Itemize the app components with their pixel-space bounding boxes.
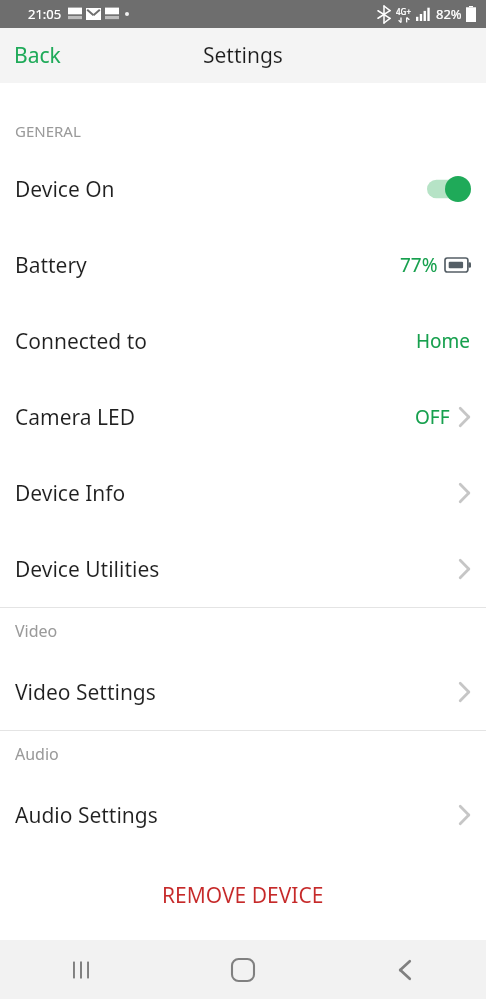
button[interactable]: Video Settings bbox=[0, 654, 486, 730]
staticText: REMOVE DEVICE bbox=[162, 881, 324, 910]
staticText: Connected to bbox=[15, 327, 147, 356]
staticText: 77% bbox=[400, 252, 438, 278]
staticText: Back bbox=[14, 41, 61, 70]
staticText: Device Utilities bbox=[15, 555, 160, 584]
staticText: 82% bbox=[436, 5, 462, 23]
button[interactable]: Device Utilities bbox=[0, 531, 486, 607]
button[interactable]: Battery bbox=[0, 227, 486, 303]
button[interactable]: Camera LED bbox=[0, 379, 486, 455]
staticText: Audio bbox=[15, 743, 59, 765]
staticText: 21:05 bbox=[28, 5, 62, 23]
staticText: Video bbox=[15, 620, 58, 642]
staticText: GENERAL bbox=[15, 121, 81, 141]
button[interactable]: REMOVE DEVICE bbox=[0, 871, 486, 920]
button[interactable]: Back bbox=[0, 33, 75, 78]
button[interactable]: Recent apps bbox=[0, 940, 162, 999]
button[interactable]: Home bbox=[162, 940, 324, 999]
button[interactable]: Device On bbox=[0, 151, 486, 227]
staticText: Device On bbox=[15, 175, 115, 204]
button[interactable]: Device On toggle bbox=[427, 176, 471, 202]
button[interactable]: Device Info bbox=[0, 455, 486, 531]
staticText: Home bbox=[416, 328, 471, 354]
staticText: Audio Settings bbox=[15, 801, 158, 830]
button[interactable]: Audio Settings bbox=[0, 777, 486, 853]
button[interactable]: Back bbox=[324, 940, 486, 999]
staticText: Device Info bbox=[15, 479, 126, 508]
staticText: OFF bbox=[415, 404, 450, 430]
staticText: Camera LED bbox=[15, 403, 136, 432]
staticText: Battery bbox=[15, 251, 87, 280]
button[interactable]: Connected to bbox=[0, 303, 486, 379]
staticText: Video Settings bbox=[15, 678, 156, 707]
staticText: 4G+ bbox=[396, 6, 411, 17]
staticText: Settings bbox=[203, 41, 283, 70]
